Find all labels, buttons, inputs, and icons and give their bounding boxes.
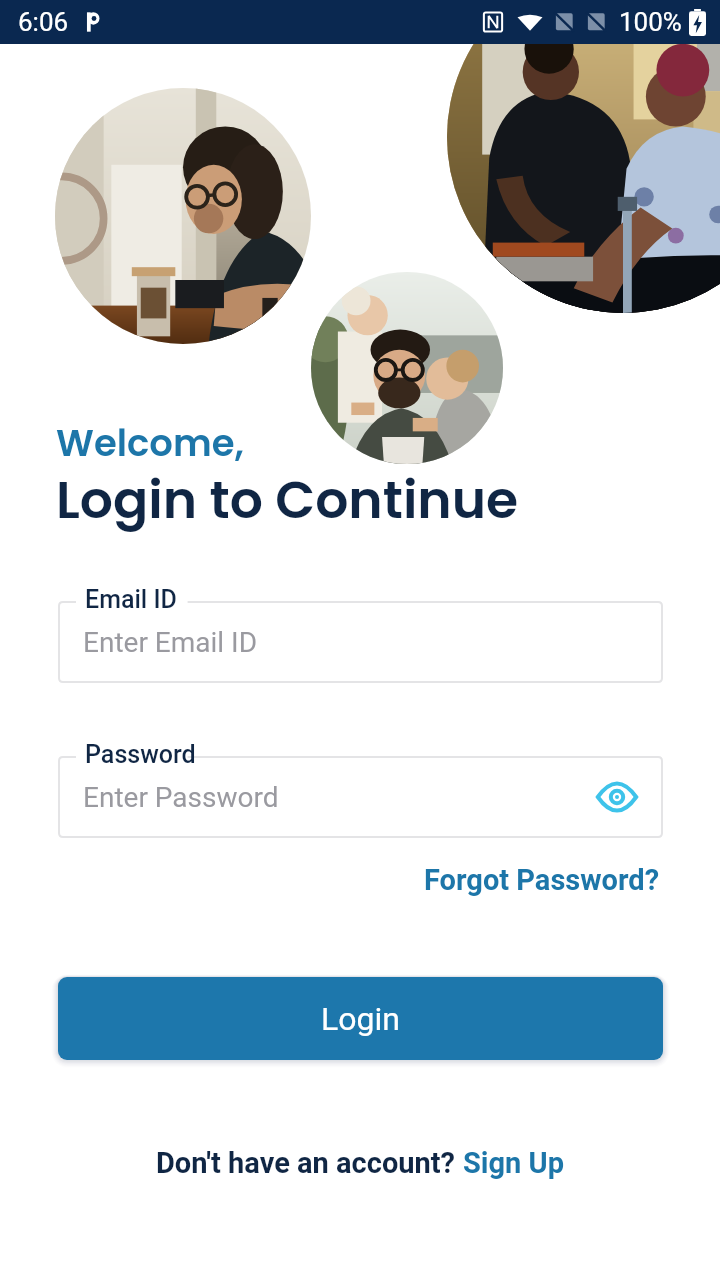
button[interactable]: Forgot Password? — [420, 855, 664, 905]
button[interactable]: Sign Up — [463, 1146, 564, 1180]
button[interactable]: Show password — [593, 773, 641, 821]
button[interactable]: Login — [58, 977, 663, 1060]
staticText: 6:06 — [18, 7, 69, 37]
staticText: 100% — [619, 7, 682, 37]
staticText: Enter Password — [83, 781, 279, 814]
staticText: Login — [321, 1000, 400, 1038]
button[interactable]: Password — [58, 756, 663, 838]
staticText: Welcome, — [56, 417, 244, 469]
staticText: Email ID — [85, 585, 177, 614]
staticText: Forgot Password? — [424, 863, 660, 897]
staticText: Sign Up — [463, 1146, 564, 1180]
staticText: Password — [85, 740, 196, 769]
staticText: Enter Email ID — [83, 626, 258, 659]
button[interactable]: Email ID — [58, 601, 663, 683]
staticText: Don't have an account? — [156, 1146, 463, 1180]
staticText: Login to Continue — [56, 463, 519, 536]
